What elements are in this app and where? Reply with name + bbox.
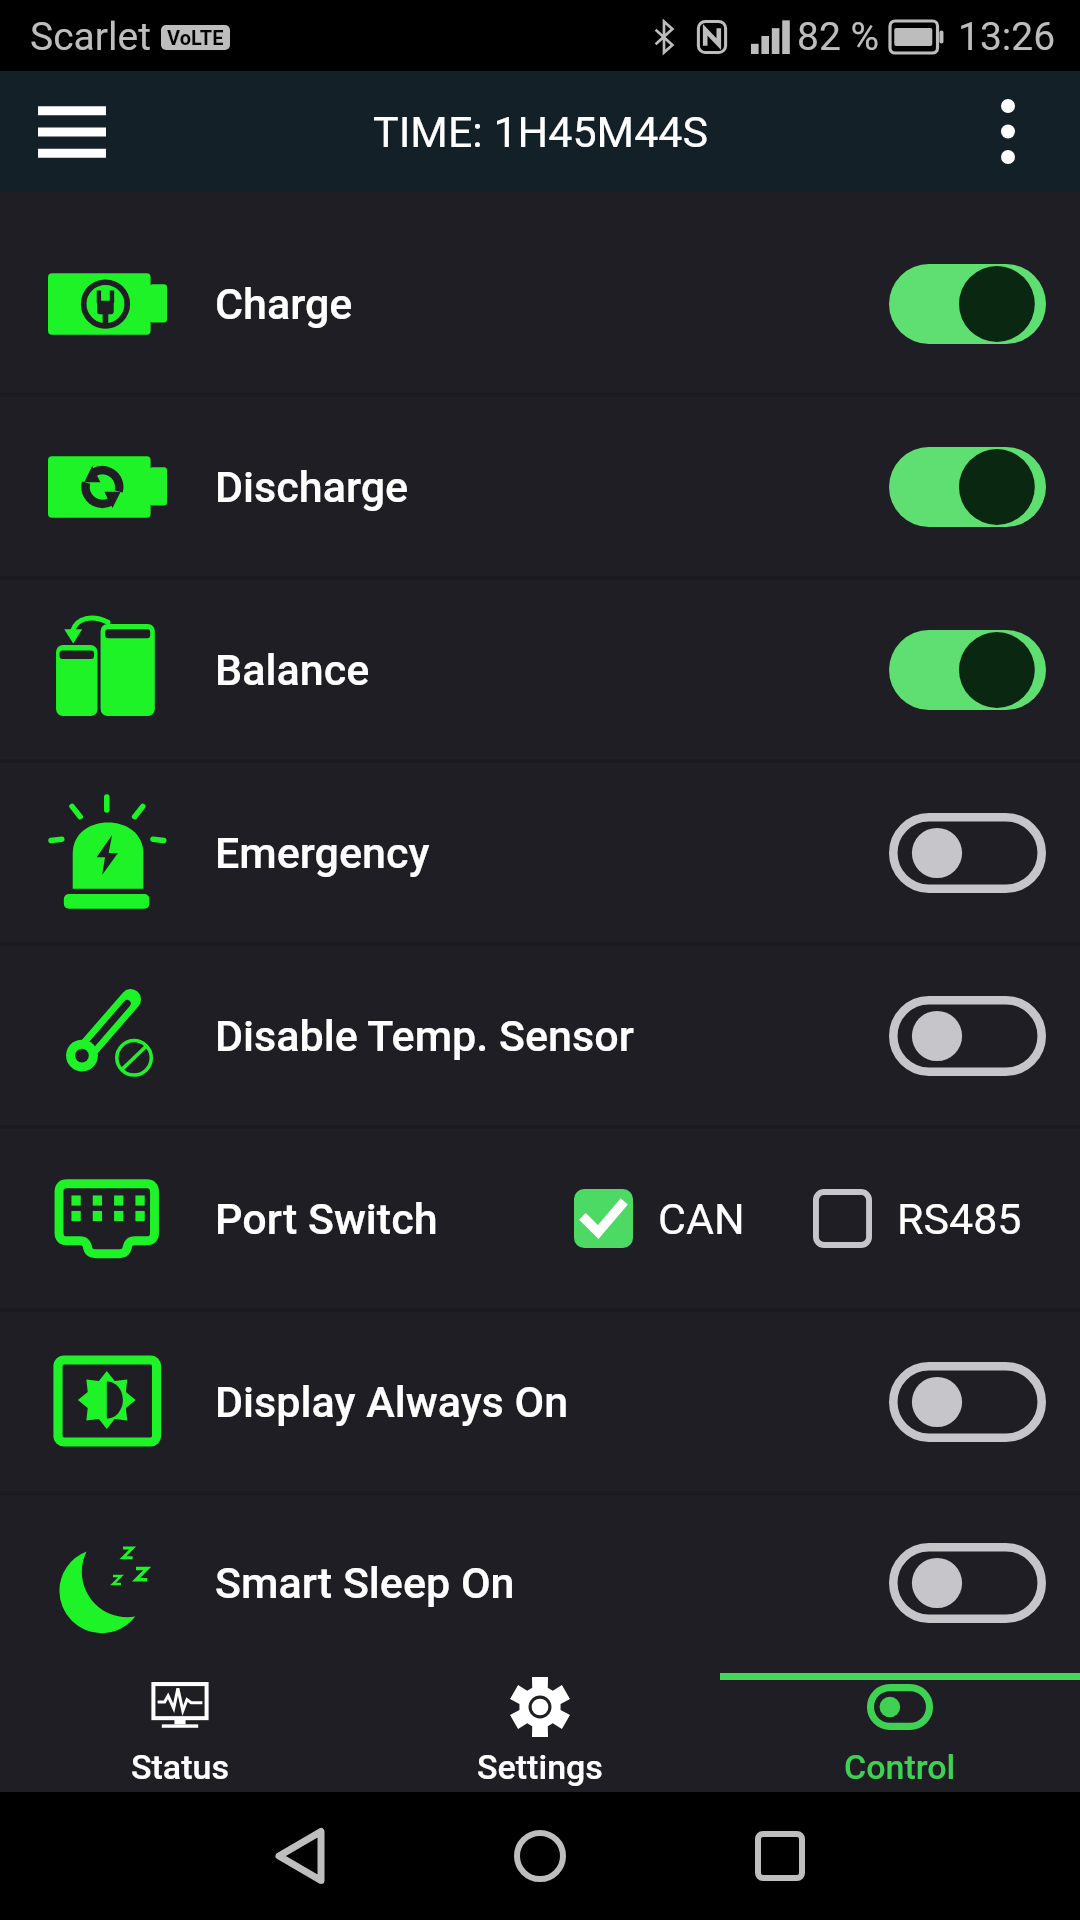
button[interactable]: Display Always On <box>0 1310 1080 1493</box>
staticText: Status <box>131 1747 230 1787</box>
button[interactable]: Disable Temp. Sensor <box>0 944 1080 1127</box>
staticText: Smart Sleep On <box>215 1558 515 1608</box>
button[interactable]: Control <box>720 1680 1080 1792</box>
button[interactable]: Home <box>480 1826 600 1886</box>
button[interactable]: Emergency <box>0 761 1080 944</box>
button[interactable] <box>889 813 1046 893</box>
button[interactable]: Recents <box>720 1826 840 1886</box>
staticText: Balance <box>215 645 370 695</box>
button[interactable]: More options <box>994 99 1022 164</box>
button[interactable]: CAN <box>574 1189 745 1248</box>
button[interactable]: RS485 <box>813 1189 1080 1248</box>
button[interactable]: Settings <box>360 1680 720 1792</box>
button[interactable]: Charge <box>0 212 1080 395</box>
button[interactable]: Smart Sleep On <box>0 1493 1080 1673</box>
button[interactable] <box>889 264 1046 344</box>
staticText: Discharge <box>215 462 409 512</box>
button[interactable] <box>889 447 1046 527</box>
button[interactable]: Balance <box>0 578 1080 761</box>
staticText: 82 % <box>797 14 880 60</box>
staticText: VoLTE <box>167 26 224 49</box>
staticText: Emergency <box>215 828 430 878</box>
button[interactable] <box>889 996 1046 1076</box>
staticText: Settings <box>477 1747 603 1787</box>
button[interactable]: Back <box>240 1826 360 1886</box>
staticText: Charge <box>215 279 353 329</box>
staticText: Disable Temp. Sensor <box>215 1011 634 1061</box>
button[interactable] <box>889 1362 1046 1442</box>
button[interactable] <box>889 630 1046 710</box>
staticText: Control <box>844 1747 956 1787</box>
staticText: CAN <box>658 1194 745 1244</box>
button[interactable] <box>889 1543 1046 1623</box>
button[interactable]: Menu <box>38 102 106 162</box>
staticText: RS485 <box>897 1194 1022 1244</box>
staticText: Port Switch <box>215 1194 438 1244</box>
button[interactable]: Discharge <box>0 395 1080 578</box>
staticText: Scarlet <box>30 14 151 60</box>
button[interactable]: Status <box>0 1680 360 1792</box>
staticText: 13:26 <box>958 14 1056 60</box>
staticText: TIME: 1H45M44S <box>373 107 708 157</box>
staticText: Display Always On <box>215 1377 569 1427</box>
